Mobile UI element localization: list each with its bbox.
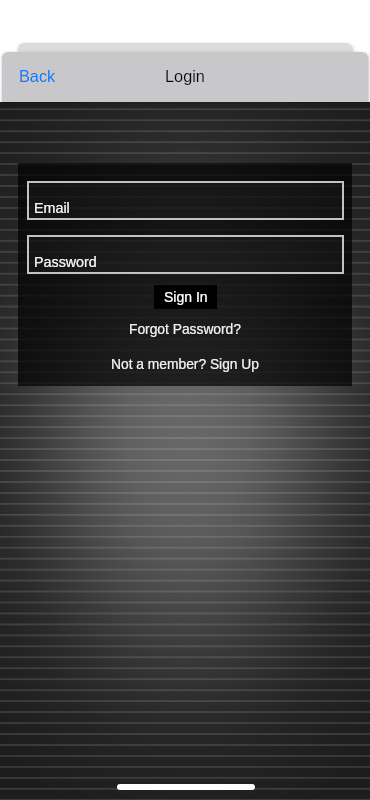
button[interactable]: Forgot Password?	[129, 322, 241, 337]
staticText: Password	[34, 254, 97, 270]
button[interactable]: Email	[27, 181, 344, 220]
staticText: Sign In	[164, 289, 208, 305]
button[interactable]: Not a member? Sign Up	[111, 357, 259, 372]
staticText: Email	[34, 200, 70, 216]
button[interactable]: Password	[27, 235, 344, 274]
button[interactable]: Sign In	[154, 285, 217, 309]
button[interactable]: Back	[19, 67, 56, 85]
staticText: Login	[165, 67, 205, 85]
